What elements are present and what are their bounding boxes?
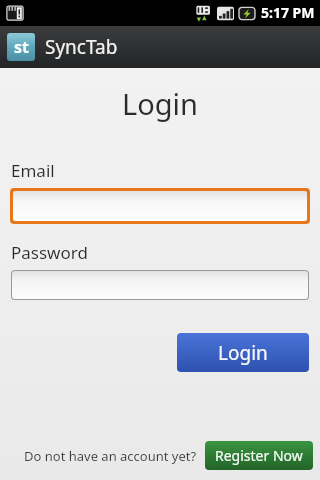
staticText: 5:17 PM [261,3,315,22]
staticText: st [14,36,29,58]
button[interactable]: Password input field [12,271,308,299]
button[interactable]: Register Now [205,441,313,470]
button[interactable]: SyncTab app icon [7,33,35,61]
staticText: Login [218,340,268,366]
staticText: Do not have an account yet? [24,447,197,465]
staticText: Register Now [215,446,303,465]
staticText: Login [122,84,198,123]
button[interactable]: Login [177,333,309,372]
staticText: Password [11,241,88,264]
staticText: Email [11,159,55,182]
staticText: SyncTab [45,34,118,60]
button[interactable]: Email input field [13,191,307,221]
